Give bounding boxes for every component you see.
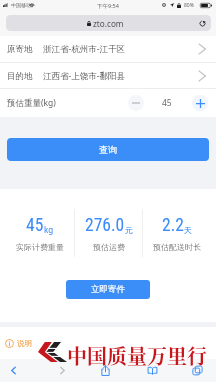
staticText: 说明 xyxy=(17,339,32,348)
staticText: 中国质量万里行 xyxy=(67,341,207,370)
button[interactable]: Increase weight xyxy=(192,95,208,111)
staticText: 预估运费 xyxy=(93,242,125,252)
button[interactable]: Reload xyxy=(196,17,208,29)
staticText: 天 xyxy=(184,225,192,235)
staticText: 80% xyxy=(184,2,194,9)
button[interactable]: Forward xyxy=(51,359,73,381)
button[interactable]: Back xyxy=(2,359,24,381)
button[interactable]: Decrease weight xyxy=(128,95,144,111)
staticText: 45 xyxy=(26,215,44,236)
staticText: 实际计费重量 xyxy=(16,242,64,252)
staticText: 立即寄件 xyxy=(91,284,125,295)
staticText: 预估重量(kg) xyxy=(7,97,56,109)
staticText: 江西省-上饶市-鄱阳县 xyxy=(43,70,125,82)
button[interactable]: Bookmarks xyxy=(141,359,163,381)
button[interactable]: 立即寄件 xyxy=(66,280,150,299)
button[interactable]: 说明 xyxy=(5,339,32,348)
staticText: 目的地 xyxy=(7,71,33,82)
staticText: 45 xyxy=(162,97,172,109)
button[interactable]: zto.com xyxy=(6,15,211,31)
button[interactable]: 原寄地 xyxy=(0,36,216,62)
staticText: 预估配送时长 xyxy=(153,242,201,252)
staticText: 下午9:54 xyxy=(97,2,119,10)
staticText: 浙江省-杭州市-江干区 xyxy=(43,43,125,55)
button[interactable]: Tabs xyxy=(186,359,208,381)
staticText: 元 xyxy=(125,225,133,235)
staticText: 276.0 xyxy=(85,215,125,236)
button[interactable]: 目的地 xyxy=(0,63,216,88)
staticText: 查询 xyxy=(99,144,117,155)
staticText: zto.com xyxy=(93,18,124,29)
staticText: 2.2 xyxy=(162,215,184,236)
button[interactable]: Share xyxy=(94,359,116,381)
staticText: 原寄地 xyxy=(7,44,33,55)
staticText: kg xyxy=(44,224,54,235)
staticText: 中国移动 xyxy=(11,2,31,8)
button[interactable]: 查询 xyxy=(7,138,209,161)
